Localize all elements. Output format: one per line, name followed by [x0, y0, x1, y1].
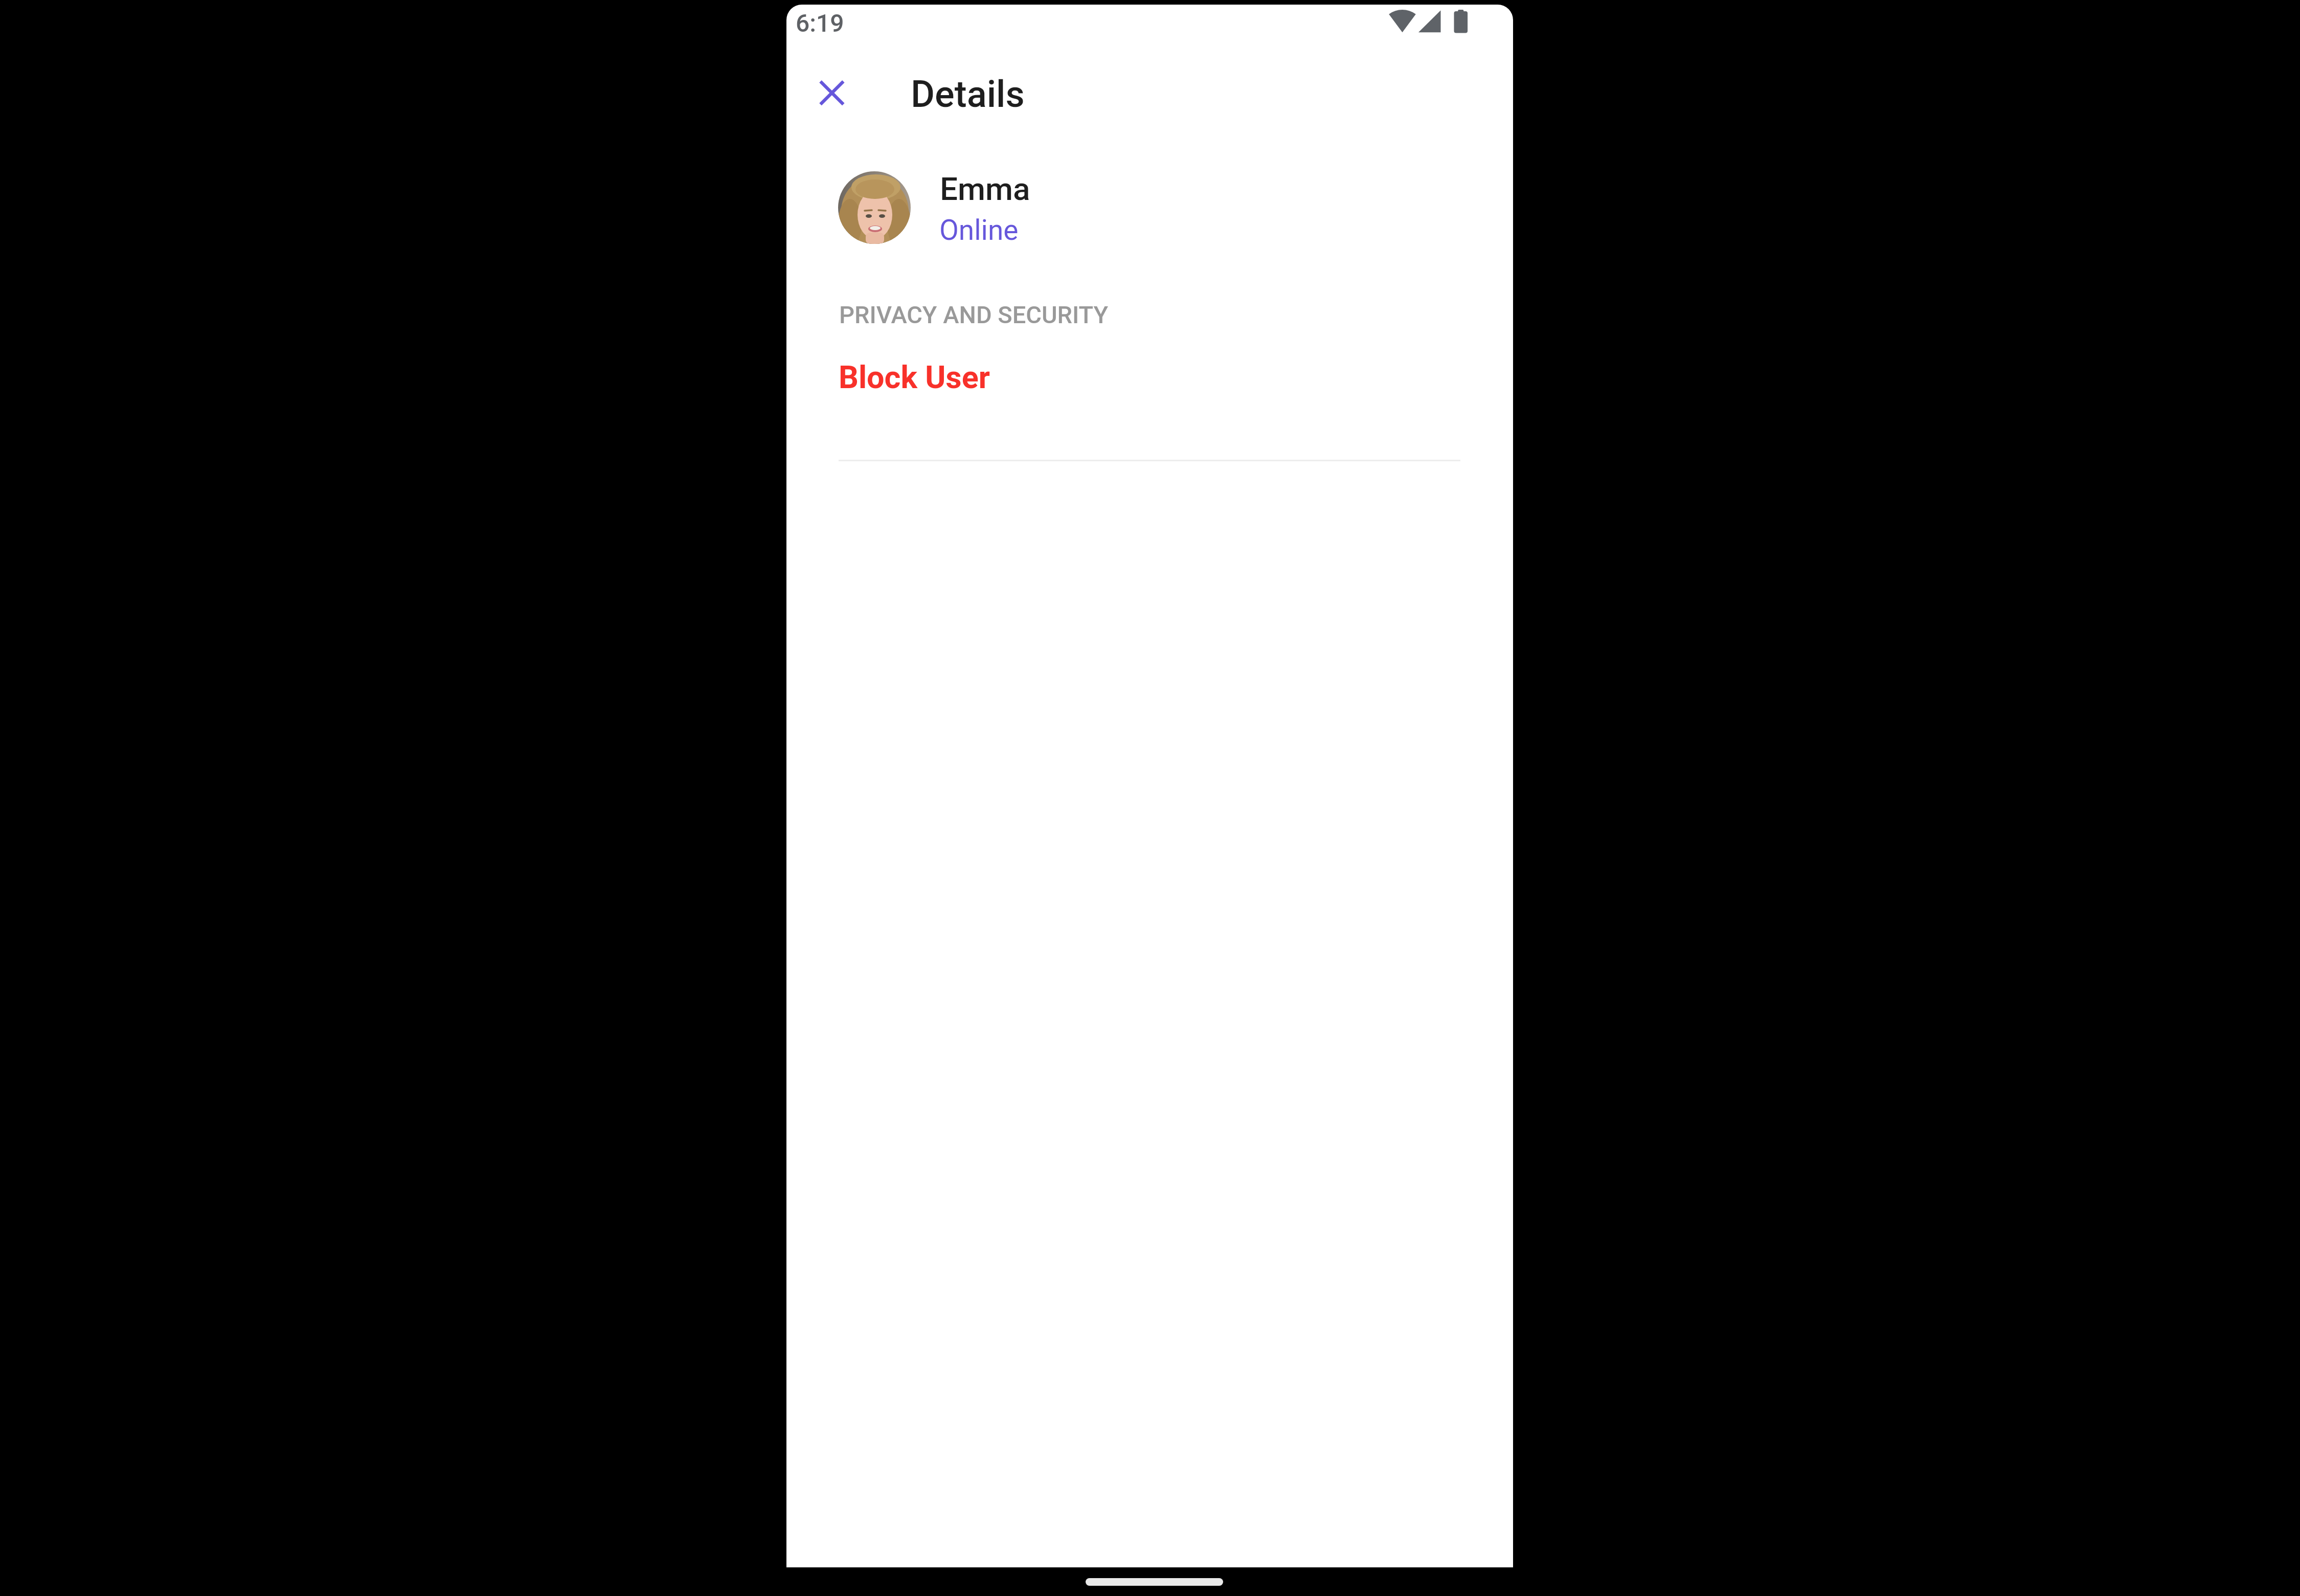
- button[interactable]: [816, 77, 848, 109]
- staticText: Block User: [839, 359, 990, 395]
- button[interactable]: [838, 171, 1461, 244]
- staticText: 6:19: [796, 9, 844, 37]
- staticText: Details: [911, 73, 1025, 116]
- staticText: PRIVACY AND SECURITY: [839, 301, 1109, 329]
- staticText: Emma: [940, 170, 1030, 208]
- button[interactable]: Block User: [786, 350, 1513, 407]
- staticText: Online: [939, 214, 1019, 246]
